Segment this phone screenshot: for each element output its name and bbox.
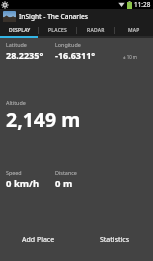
staticText: Add Place xyxy=(22,235,55,245)
staticText: Latitude xyxy=(6,41,27,48)
button[interactable]: PLACES xyxy=(39,24,77,36)
staticText: Distance xyxy=(55,169,77,176)
staticText: 28.2235° xyxy=(6,49,44,61)
staticText: 2,149 m xyxy=(6,106,81,133)
staticText: PLACES xyxy=(48,27,68,34)
staticText: Altitude xyxy=(6,99,26,106)
staticText: ± 10 m xyxy=(123,54,137,60)
staticText: MAP xyxy=(128,27,140,34)
staticText: -16.6311° xyxy=(55,49,96,61)
staticText: 0 km/h xyxy=(6,177,40,190)
button[interactable]: Statistics xyxy=(76,219,153,261)
staticText: Speed xyxy=(6,169,22,176)
staticText: Statistics xyxy=(100,235,130,245)
staticText: 0 m xyxy=(55,177,73,190)
button[interactable]: DISPLAY xyxy=(0,24,39,36)
staticText: InSight - The Canaries xyxy=(19,12,88,21)
staticText: 11:28 xyxy=(134,0,151,9)
staticText: Longitude xyxy=(55,41,81,48)
button[interactable]: RADAR xyxy=(77,24,115,36)
button[interactable]: MAP xyxy=(115,24,153,36)
staticText: DISPLAY xyxy=(9,27,31,34)
other: Notification xyxy=(1,1,9,9)
staticText: RADAR xyxy=(87,27,105,34)
button[interactable]: Add Place xyxy=(0,219,76,261)
button[interactable]: InSight - The Canaries xyxy=(0,9,153,24)
